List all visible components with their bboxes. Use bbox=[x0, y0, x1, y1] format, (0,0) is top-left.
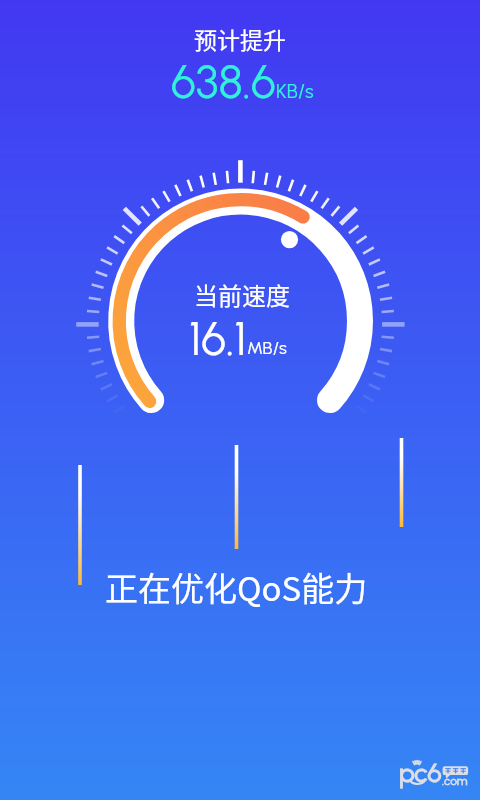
staticText: MB/s bbox=[247, 337, 287, 359]
staticText: KB/s bbox=[276, 79, 314, 103]
staticText: 638.6 bbox=[171, 54, 276, 109]
staticText: 当前速度 bbox=[194, 277, 290, 312]
staticText: 正在优化QoS能力 bbox=[105, 563, 368, 611]
staticText: pc6 bbox=[399, 757, 442, 788]
staticText: .com bbox=[442, 774, 468, 788]
staticText: 预计提升 bbox=[194, 22, 286, 55]
staticText: 16.1 bbox=[189, 311, 247, 366]
